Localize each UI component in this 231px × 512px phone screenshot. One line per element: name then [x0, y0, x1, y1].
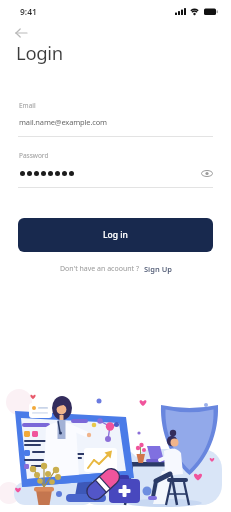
staticText: 9:41 [20, 6, 37, 18]
staticText: mail.name@example.com [19, 117, 107, 127]
staticText: Login [16, 40, 63, 65]
staticText: Log in [103, 229, 128, 241]
staticText: Sign Up [144, 264, 172, 274]
staticText: Password [19, 151, 49, 160]
button[interactable] [13, 26, 33, 40]
button[interactable]: Log in [18, 218, 213, 252]
staticText: Email [19, 101, 36, 110]
button[interactable] [18, 169, 213, 188]
button[interactable]: mail.name@example.com [18, 117, 213, 137]
button[interactable] [201, 169, 213, 178]
staticText: Don't have an acoount ? [60, 264, 139, 274]
button[interactable]: Sign Up [144, 264, 172, 274]
